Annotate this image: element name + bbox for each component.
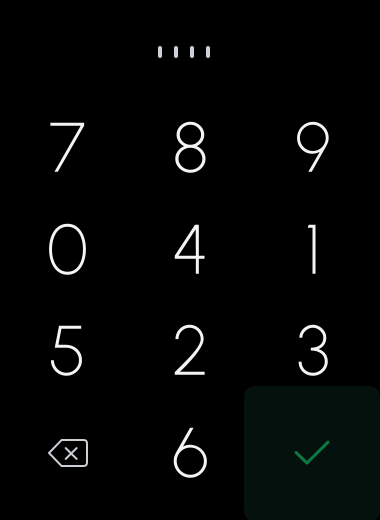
button[interactable]: 6 [131, 404, 249, 500]
button[interactable]: Confirm [244, 386, 380, 520]
button[interactable]: 0 [8, 201, 126, 297]
button[interactable]: Delete [9, 405, 127, 501]
button[interactable]: 7 [8, 99, 126, 195]
button[interactable]: 9 [254, 99, 372, 195]
staticText: 3 [296, 309, 329, 392]
staticText: 2 [172, 309, 209, 392]
button[interactable]: 4 [131, 201, 249, 297]
staticText: 6 [172, 411, 209, 494]
button[interactable]: 5 [8, 302, 126, 398]
staticText: 1 [305, 208, 321, 291]
staticText: 4 [172, 208, 209, 291]
staticText: 9 [295, 106, 331, 189]
staticText: 5 [48, 309, 86, 392]
button[interactable]: 8 [131, 99, 249, 195]
button[interactable]: 3 [254, 302, 372, 398]
button[interactable]: 2 [131, 302, 249, 398]
staticText: 7 [49, 106, 86, 189]
staticText: 8 [172, 106, 208, 189]
button[interactable]: 1 [254, 201, 372, 297]
staticText: 0 [47, 208, 88, 291]
